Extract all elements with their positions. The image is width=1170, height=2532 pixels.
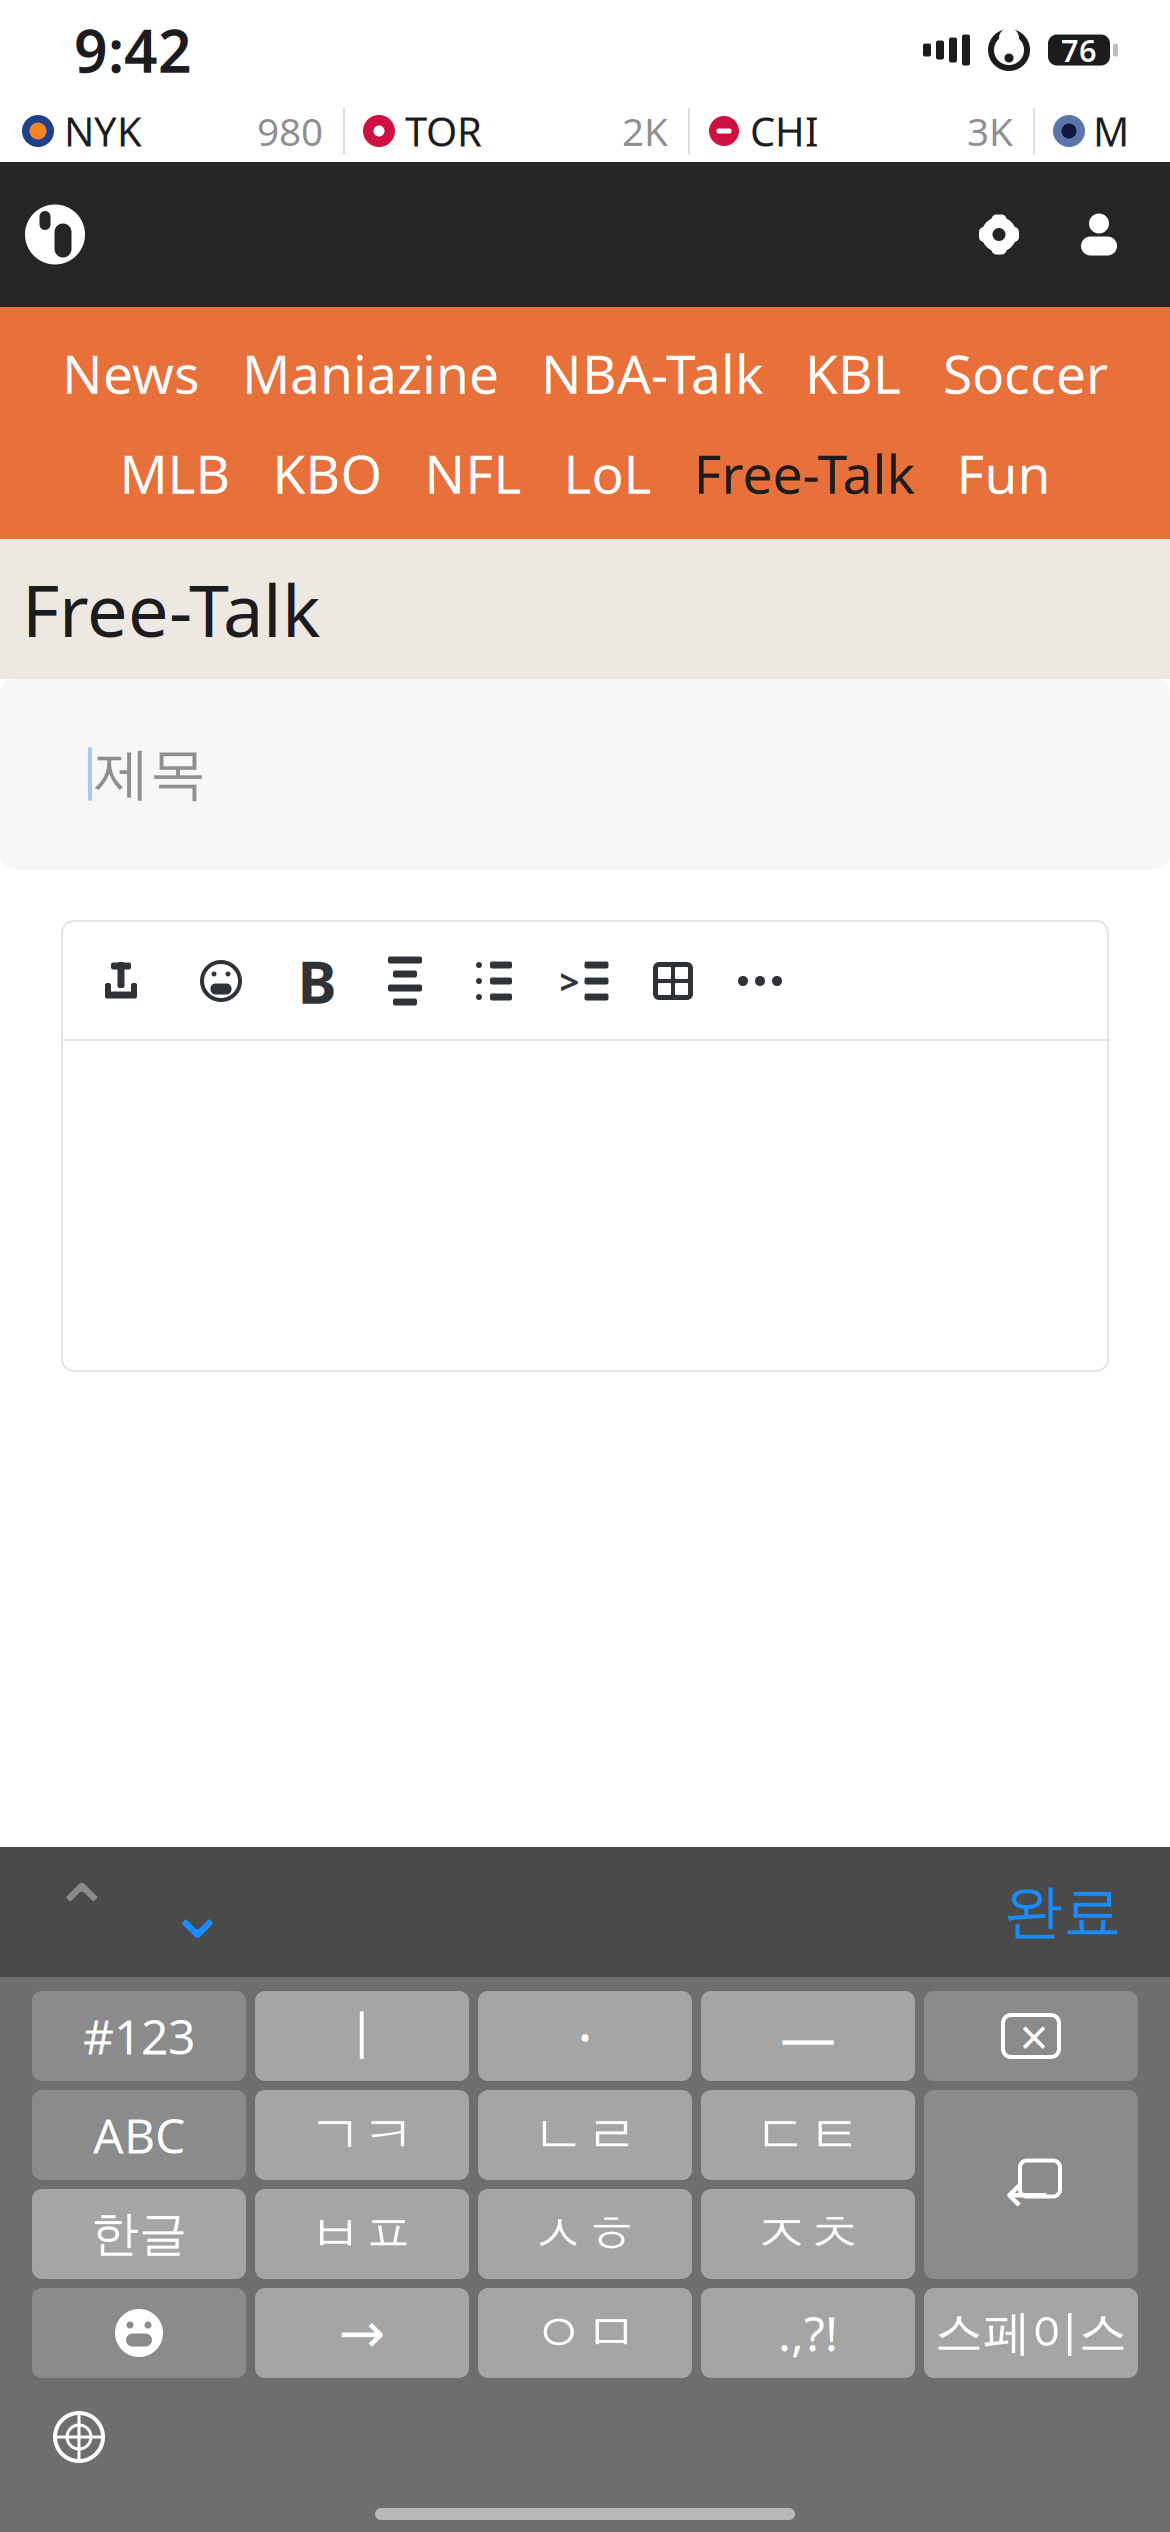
staticText: 제목 [94, 740, 206, 808]
staticText: → [338, 2301, 385, 2365]
button[interactable]: LoL [563, 438, 651, 508]
button[interactable]: NFL [424, 438, 521, 508]
staticText: ㅣ [334, 2002, 390, 2070]
button[interactable]: CHI [690, 100, 1035, 162]
staticText: 스페이스 [935, 2303, 1127, 2362]
button[interactable]: Free-Talk [693, 438, 914, 508]
staticText: Free-Talk [693, 438, 914, 508]
button[interactable]: 스페이스 [924, 2288, 1138, 2378]
button[interactable]: Indent [562, 957, 606, 1005]
button[interactable]: · [478, 1991, 692, 2081]
button[interactable]: Switch keyboard [52, 2410, 106, 2464]
staticText: 76 [1061, 30, 1097, 70]
button[interactable]: Previous field [46, 1876, 118, 1948]
button[interactable]: Fun [956, 438, 1050, 508]
staticText: 980 [257, 105, 323, 157]
staticText: ⌃ [50, 1870, 113, 1954]
staticText: MLB [119, 438, 230, 508]
staticText: 9:42 [74, 11, 192, 89]
staticText: NFL [424, 438, 521, 508]
staticText: CHI [750, 104, 819, 157]
button[interactable]: 완료 [1004, 1876, 1122, 1948]
button[interactable]: Insert table [650, 957, 696, 1005]
staticText: KBO [272, 438, 382, 508]
staticText: ㅂㅍ [309, 2201, 415, 2267]
button[interactable]: .,?! [701, 2288, 915, 2378]
button[interactable]: ㅈㅊ [701, 2189, 915, 2279]
staticText: M [1093, 104, 1129, 157]
staticText: NBA-Talk [541, 338, 763, 408]
button[interactable]: Soccer [943, 338, 1108, 408]
button[interactable]: Home [22, 201, 88, 267]
button[interactable]: NYK [0, 100, 345, 162]
button[interactable]: Return [924, 2090, 1138, 2279]
staticText: #123 [83, 2004, 195, 2068]
staticText: ㅇㅁ [532, 2300, 638, 2366]
staticText: ㄱㅋ [309, 2102, 415, 2168]
staticText: ← [1004, 2163, 1049, 2224]
button[interactable]: Maniazine [242, 338, 499, 408]
button[interactable]: KBO [272, 438, 382, 508]
button[interactable]: Account [1076, 211, 1122, 257]
button[interactable]: ㄱㅋ [255, 2090, 469, 2180]
button[interactable]: Emoji [200, 957, 242, 1005]
staticText: KBL [805, 338, 901, 408]
button[interactable]: TOR [345, 100, 690, 162]
button[interactable]: #123 [32, 1991, 246, 2081]
button[interactable]: ㅣ [255, 1991, 469, 2081]
button[interactable]: → [255, 2288, 469, 2378]
staticText: · [577, 1999, 592, 2073]
button[interactable]: Next field [162, 1876, 234, 1948]
button[interactable]: ㅇㅁ [478, 2288, 692, 2378]
button[interactable]: ㄷㅌ [701, 2090, 915, 2180]
button[interactable]: More options [736, 957, 784, 1005]
staticText: ㄷㅌ [755, 2102, 861, 2168]
staticText: B [297, 942, 336, 1020]
button[interactable]: 한글 [32, 2189, 246, 2279]
staticText: Maniazine [242, 338, 499, 408]
staticText: > [559, 958, 579, 1004]
staticText: 한글 [91, 2204, 187, 2263]
button[interactable]: Backspace [924, 1991, 1138, 2081]
staticText: .,?! [778, 2301, 838, 2365]
button[interactable]: — [701, 1991, 915, 2081]
button[interactable]: B [298, 957, 336, 1005]
button[interactable]: Emoji keyboard [32, 2288, 246, 2378]
staticText: Fun [956, 438, 1050, 508]
button[interactable]: ㅂㅍ [255, 2189, 469, 2279]
staticText: ㅅㅎ [532, 2201, 638, 2267]
button[interactable]: Align [386, 957, 424, 1005]
button[interactable]: MLB [119, 438, 230, 508]
button[interactable]: Upload image [102, 957, 140, 1005]
staticText: 3K [967, 105, 1013, 157]
button[interactable]: ㅅㅎ [478, 2189, 692, 2279]
staticText: LoL [563, 438, 651, 508]
button[interactable]: NBA-Talk [541, 338, 763, 408]
staticText: — [780, 1999, 836, 2073]
staticText: 완료 [1004, 1876, 1122, 1948]
button[interactable]: ABC [32, 2090, 246, 2180]
staticText: Free-Talk [22, 561, 320, 657]
button[interactable]: KBL [805, 338, 901, 408]
staticText: 2K [622, 105, 668, 157]
button[interactable]: Settings [976, 211, 1022, 257]
staticText: News [62, 338, 200, 408]
button[interactable]: ㄴㄹ [478, 2090, 692, 2180]
button[interactable]: News [62, 338, 200, 408]
staticText: Soccer [943, 338, 1108, 408]
staticText: ABC [93, 2103, 185, 2167]
staticText: TOR [405, 104, 482, 157]
staticText: ㅈㅊ [755, 2201, 861, 2267]
button[interactable]: Bulleted list [474, 957, 514, 1005]
staticText: NYK [64, 104, 142, 157]
staticText: ⌄ [166, 1870, 229, 1954]
staticText: ㄴㄹ [532, 2102, 638, 2168]
staticText: × [1019, 2002, 1048, 2070]
